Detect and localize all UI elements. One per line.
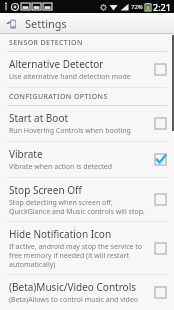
staticText: Vibrate [9,147,43,161]
staticText: 2:21 [153,1,171,13]
staticText: If active, android may stop the service … [9,242,148,269]
button[interactable]: (Beta)Music/Video Controls [0,275,174,310]
other: Toggle [154,193,167,206]
other: Toggle [154,153,167,166]
button[interactable]: Vibrate [0,142,174,177]
staticText: Run Hovering Controls when booting [9,126,131,136]
staticText: 72% [131,3,143,11]
staticText: Stop Screen Off [9,183,82,197]
staticText: Hide Notification Icon [9,227,112,241]
staticText: Use alternative hand detection mode [9,72,131,82]
other: Toggle [154,63,167,76]
button[interactable]: Hide Notification Icon [0,222,174,274]
staticText: Vibrate when action is detected [9,162,113,172]
button[interactable]: Alternative Detector [0,52,174,87]
other: Toggle [154,242,167,255]
other: Toggle [154,117,167,130]
staticText: Start at Boot [9,111,69,125]
staticText: SENSOR DETECTION [9,38,83,48]
button[interactable]: Start at Boot [0,106,174,141]
button[interactable]: Settings [0,13,174,34]
staticText: Alternative Detector [9,57,104,71]
staticText: Settings [25,16,67,31]
staticText: (Beta)Music/Video Controls [9,280,137,294]
staticText: (Beta)Allows to control music and video … [9,295,148,305]
staticText: CONFIGURATION OPTIONS [9,92,108,102]
button[interactable]: Stop Screen Off [0,178,174,221]
other: Toggle [154,286,167,299]
staticText: Stop detecting when screen off, QuickGla… [9,198,148,216]
